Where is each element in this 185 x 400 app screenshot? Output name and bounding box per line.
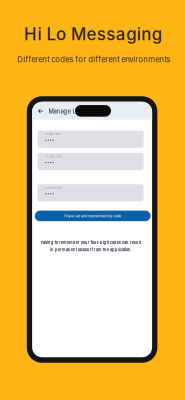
button[interactable]: Hi Level Code: [37, 153, 143, 170]
staticText: I have set and memorized my code: [64, 214, 121, 218]
staticText: Lo Level Code: [45, 133, 60, 136]
button[interactable]: Distress Code: [37, 184, 143, 201]
staticText: Hi Lo Messaging: [24, 24, 162, 44]
button[interactable]: Lo Level Code: [37, 131, 143, 148]
staticText: in permanent lockout from the applicatio…: [50, 247, 132, 252]
staticText: Distress Code: [45, 186, 61, 189]
staticText: Manage Lock Codes: [49, 108, 106, 115]
staticText: Different codes for different environmen…: [17, 55, 170, 64]
button[interactable]: Back: [36, 107, 45, 115]
button[interactable]: I have set and memorized my code: [35, 211, 151, 221]
staticText: Failing to remember your four-digit code…: [41, 240, 141, 245]
staticText: Hi Level Code: [45, 155, 61, 158]
